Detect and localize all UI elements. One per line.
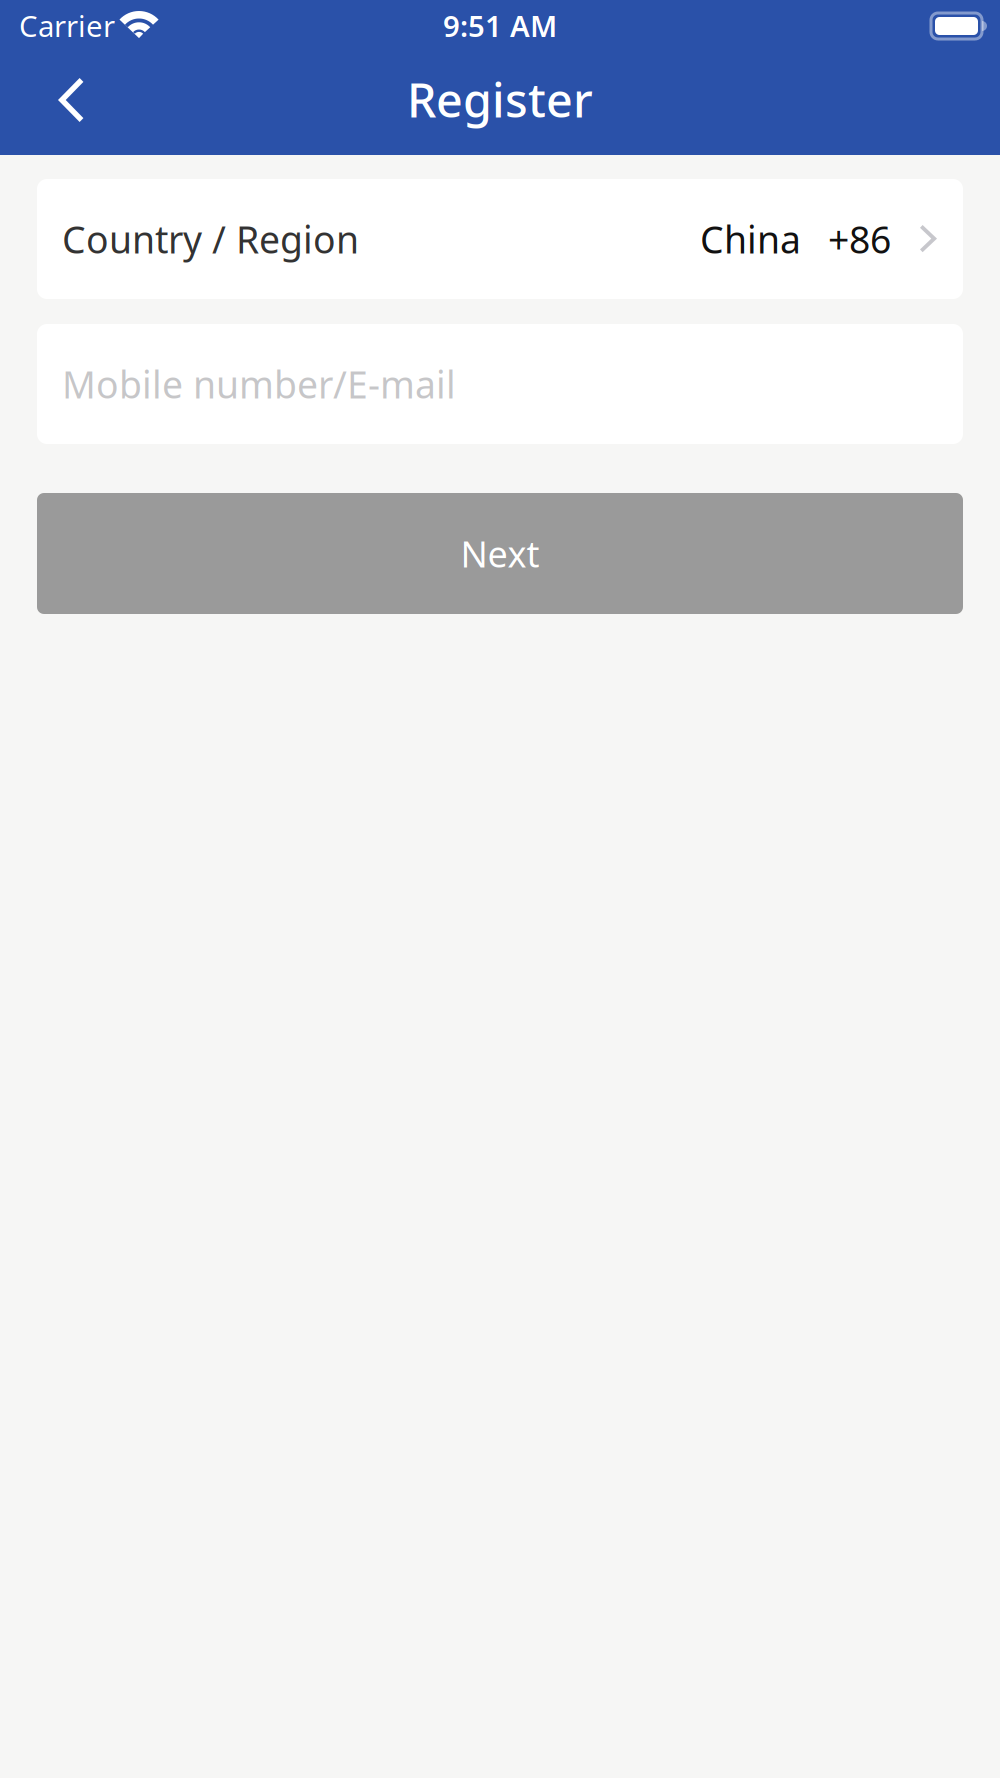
button[interactable]: Country / Region: [37, 179, 963, 299]
button[interactable]: Next: [37, 493, 963, 614]
button[interactable]: Back: [0, 55, 119, 155]
button[interactable]: Mobile number/E-mail: [37, 324, 963, 444]
staticText: 9:51 AM: [443, 6, 557, 45]
staticText: Register: [407, 68, 593, 130]
staticText: Mobile number/E-mail: [62, 359, 456, 409]
staticText: China: [700, 214, 801, 264]
staticText: Country / Region: [62, 214, 359, 264]
staticText: Next: [460, 530, 539, 577]
staticText: +86: [828, 214, 891, 264]
staticText: Carrier: [19, 6, 115, 45]
